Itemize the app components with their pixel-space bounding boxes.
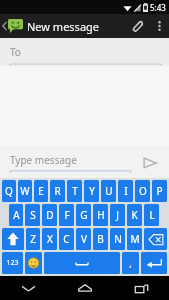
staticText: New message bbox=[27, 19, 100, 34]
staticText: J bbox=[116, 208, 119, 222]
button[interactable]: D bbox=[42, 204, 57, 226]
staticText: Type message bbox=[10, 153, 77, 167]
button[interactable]: S bbox=[25, 204, 40, 226]
button[interactable]: Delete bbox=[144, 228, 167, 250]
button[interactable]: H bbox=[93, 204, 108, 226]
staticText: 123 bbox=[6, 258, 19, 268]
button[interactable]: I bbox=[118, 180, 133, 202]
button[interactable]: K bbox=[127, 204, 142, 226]
button[interactable]: Y bbox=[84, 180, 99, 202]
button[interactable]: Back bbox=[0, 14, 100, 38]
button[interactable]: 123 bbox=[2, 252, 23, 274]
button[interactable]: J bbox=[110, 204, 125, 226]
button[interactable]: More options bbox=[149, 14, 169, 38]
button[interactable]: Z bbox=[26, 228, 40, 250]
staticText: G bbox=[80, 208, 88, 222]
staticText: E bbox=[38, 184, 44, 198]
staticText: Y bbox=[89, 184, 95, 198]
staticText: B bbox=[97, 232, 104, 246]
staticText: N bbox=[114, 232, 122, 246]
button[interactable]: Recents bbox=[113, 276, 169, 300]
button[interactable]: B bbox=[93, 228, 108, 250]
button[interactable]: P bbox=[152, 180, 167, 202]
button[interactable]: O bbox=[135, 180, 150, 202]
staticText: U bbox=[105, 184, 113, 198]
staticText: L bbox=[149, 208, 155, 222]
staticText: H bbox=[97, 208, 105, 222]
button[interactable]: M bbox=[127, 228, 142, 250]
button[interactable]: F bbox=[59, 204, 74, 226]
staticText: D bbox=[46, 208, 54, 222]
button[interactable]: X bbox=[42, 228, 57, 250]
button[interactable]: U bbox=[101, 180, 116, 202]
button[interactable]: Send bbox=[137, 152, 163, 174]
staticText: V bbox=[81, 232, 87, 246]
staticText: X bbox=[47, 232, 53, 246]
button[interactable]: Q bbox=[2, 180, 16, 202]
button[interactable]: E bbox=[34, 180, 48, 202]
button[interactable]: Enter bbox=[141, 252, 167, 274]
button[interactable]: L bbox=[144, 204, 159, 226]
staticText: C bbox=[63, 232, 70, 246]
button[interactable]: W bbox=[18, 180, 32, 202]
button[interactable]: G bbox=[76, 204, 91, 226]
staticText: A bbox=[13, 208, 20, 222]
button[interactable]: A bbox=[9, 204, 23, 226]
button[interactable]: N bbox=[110, 228, 125, 250]
button[interactable]: Home bbox=[57, 276, 113, 300]
staticText: F bbox=[64, 208, 70, 222]
staticText: P bbox=[156, 184, 163, 198]
button[interactable]: Attach bbox=[125, 14, 149, 38]
staticText: To bbox=[10, 45, 21, 59]
staticText: Q bbox=[5, 184, 13, 198]
button[interactable]: Space bbox=[44, 252, 120, 274]
staticText: , bbox=[129, 257, 132, 269]
staticText: 5:43 bbox=[150, 2, 166, 13]
staticText: R bbox=[54, 184, 61, 198]
button[interactable]: , bbox=[122, 252, 139, 274]
staticText: W bbox=[20, 184, 30, 198]
button[interactable]: Shift bbox=[2, 228, 24, 250]
staticText: O bbox=[139, 184, 147, 198]
button[interactable]: V bbox=[76, 228, 91, 250]
button[interactable]: C bbox=[59, 228, 74, 250]
staticText: M bbox=[130, 232, 140, 246]
button[interactable]: To bbox=[0, 38, 169, 66]
button[interactable]: Emoji bbox=[25, 252, 42, 274]
staticText: K bbox=[131, 208, 138, 222]
staticText: I bbox=[124, 184, 128, 198]
button[interactable]: Type message bbox=[10, 153, 131, 173]
staticText: S bbox=[30, 208, 36, 222]
staticText: Z bbox=[30, 232, 36, 246]
button[interactable]: R bbox=[50, 180, 65, 202]
staticText: T bbox=[72, 184, 78, 198]
button[interactable]: T bbox=[67, 180, 82, 202]
button[interactable]: Hide keyboard bbox=[0, 276, 57, 300]
